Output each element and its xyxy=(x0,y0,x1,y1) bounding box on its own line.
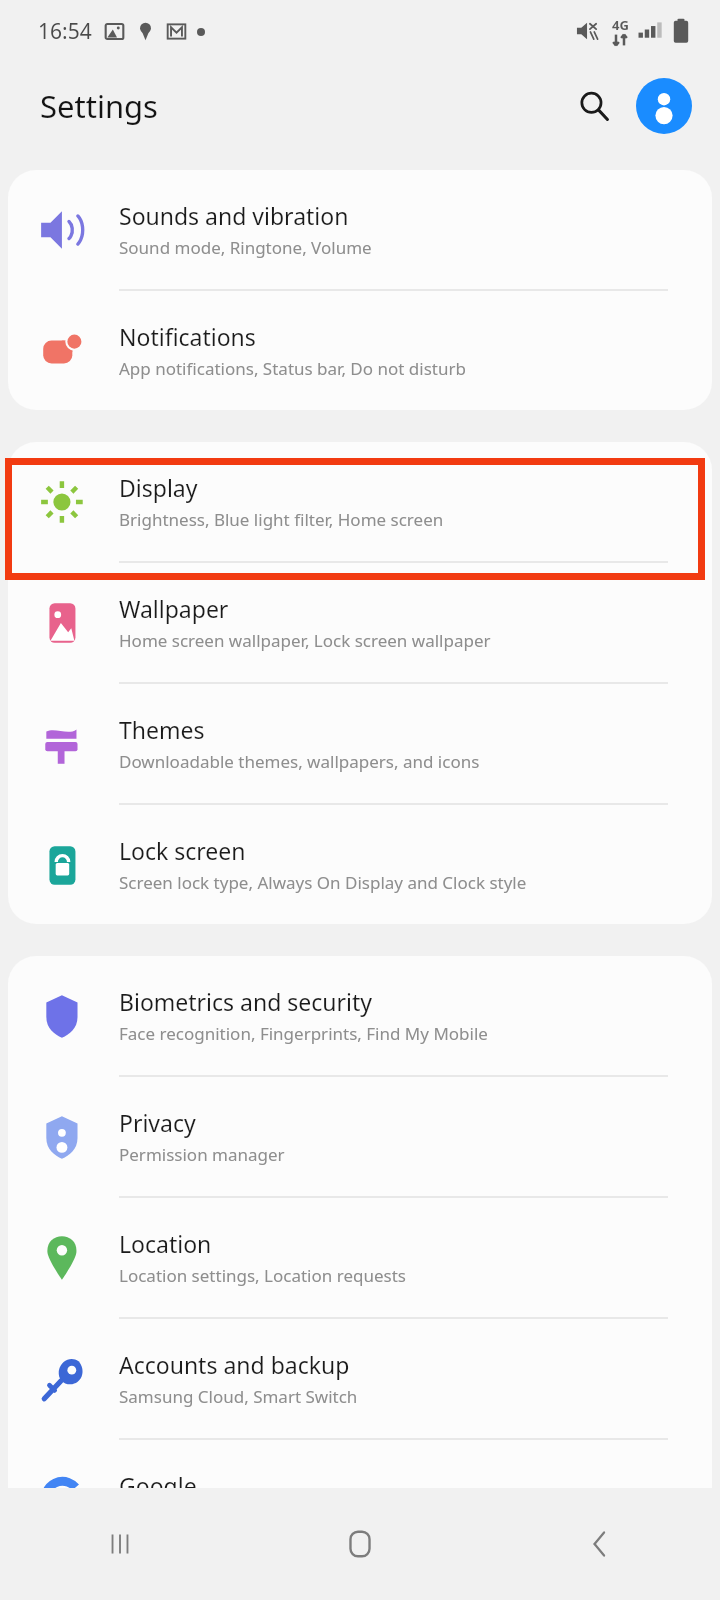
staticText: Location xyxy=(119,1228,212,1259)
staticText: Samsung Cloud, Smart Switch xyxy=(119,1385,358,1408)
staticText: Lock screen xyxy=(119,835,246,866)
staticText: Home screen wallpaper, Lock screen wallp… xyxy=(119,629,491,652)
button[interactable]: Biometrics and security xyxy=(8,956,712,1077)
staticText: Location settings, Location requests xyxy=(119,1264,406,1287)
staticText: Brightness, Blue light filter, Home scre… xyxy=(119,508,444,531)
button[interactable]: Back xyxy=(480,1488,720,1600)
staticText: Wallpaper xyxy=(119,593,229,624)
button[interactable]: Display xyxy=(8,442,712,563)
staticText: 16:54 xyxy=(38,17,92,46)
staticText: Permission manager xyxy=(119,1143,285,1166)
staticText: App notifications, Status bar, Do not di… xyxy=(119,357,466,380)
button[interactable]: Account xyxy=(636,78,692,134)
button[interactable]: Home xyxy=(240,1488,480,1600)
button[interactable]: Lock screen xyxy=(8,805,712,924)
staticText: Sounds and vibration xyxy=(119,200,349,231)
button[interactable]: Privacy xyxy=(8,1077,712,1198)
button[interactable]: Recents xyxy=(0,1488,240,1600)
staticText: Display xyxy=(119,472,198,503)
staticText: Notifications xyxy=(119,321,256,352)
staticText: Google xyxy=(119,1470,197,1501)
staticText: Accounts and backup xyxy=(119,1349,350,1380)
staticText: Themes xyxy=(119,714,205,745)
button[interactable]: Google xyxy=(8,1440,712,1559)
button[interactable]: Wallpaper xyxy=(8,563,712,684)
button[interactable]: Accounts and backup xyxy=(8,1319,712,1440)
staticText: Downloadable themes, wallpapers, and ico… xyxy=(119,750,480,773)
staticText: 4G xyxy=(612,16,629,34)
button[interactable]: Location xyxy=(8,1198,712,1319)
staticText: Screen lock type, Always On Display and … xyxy=(119,871,527,894)
staticText: Face recognition, Fingerprints, Find My … xyxy=(119,1022,488,1045)
button[interactable]: Sounds and vibration xyxy=(8,170,712,291)
staticText: Sound mode, Ringtone, Volume xyxy=(119,236,372,259)
button[interactable]: Notifications xyxy=(8,291,712,410)
staticText: Privacy xyxy=(119,1107,196,1138)
staticText: Biometrics and security xyxy=(119,986,373,1017)
staticText: Settings xyxy=(40,85,158,127)
button[interactable]: Search xyxy=(566,78,622,134)
button[interactable]: Themes xyxy=(8,684,712,805)
